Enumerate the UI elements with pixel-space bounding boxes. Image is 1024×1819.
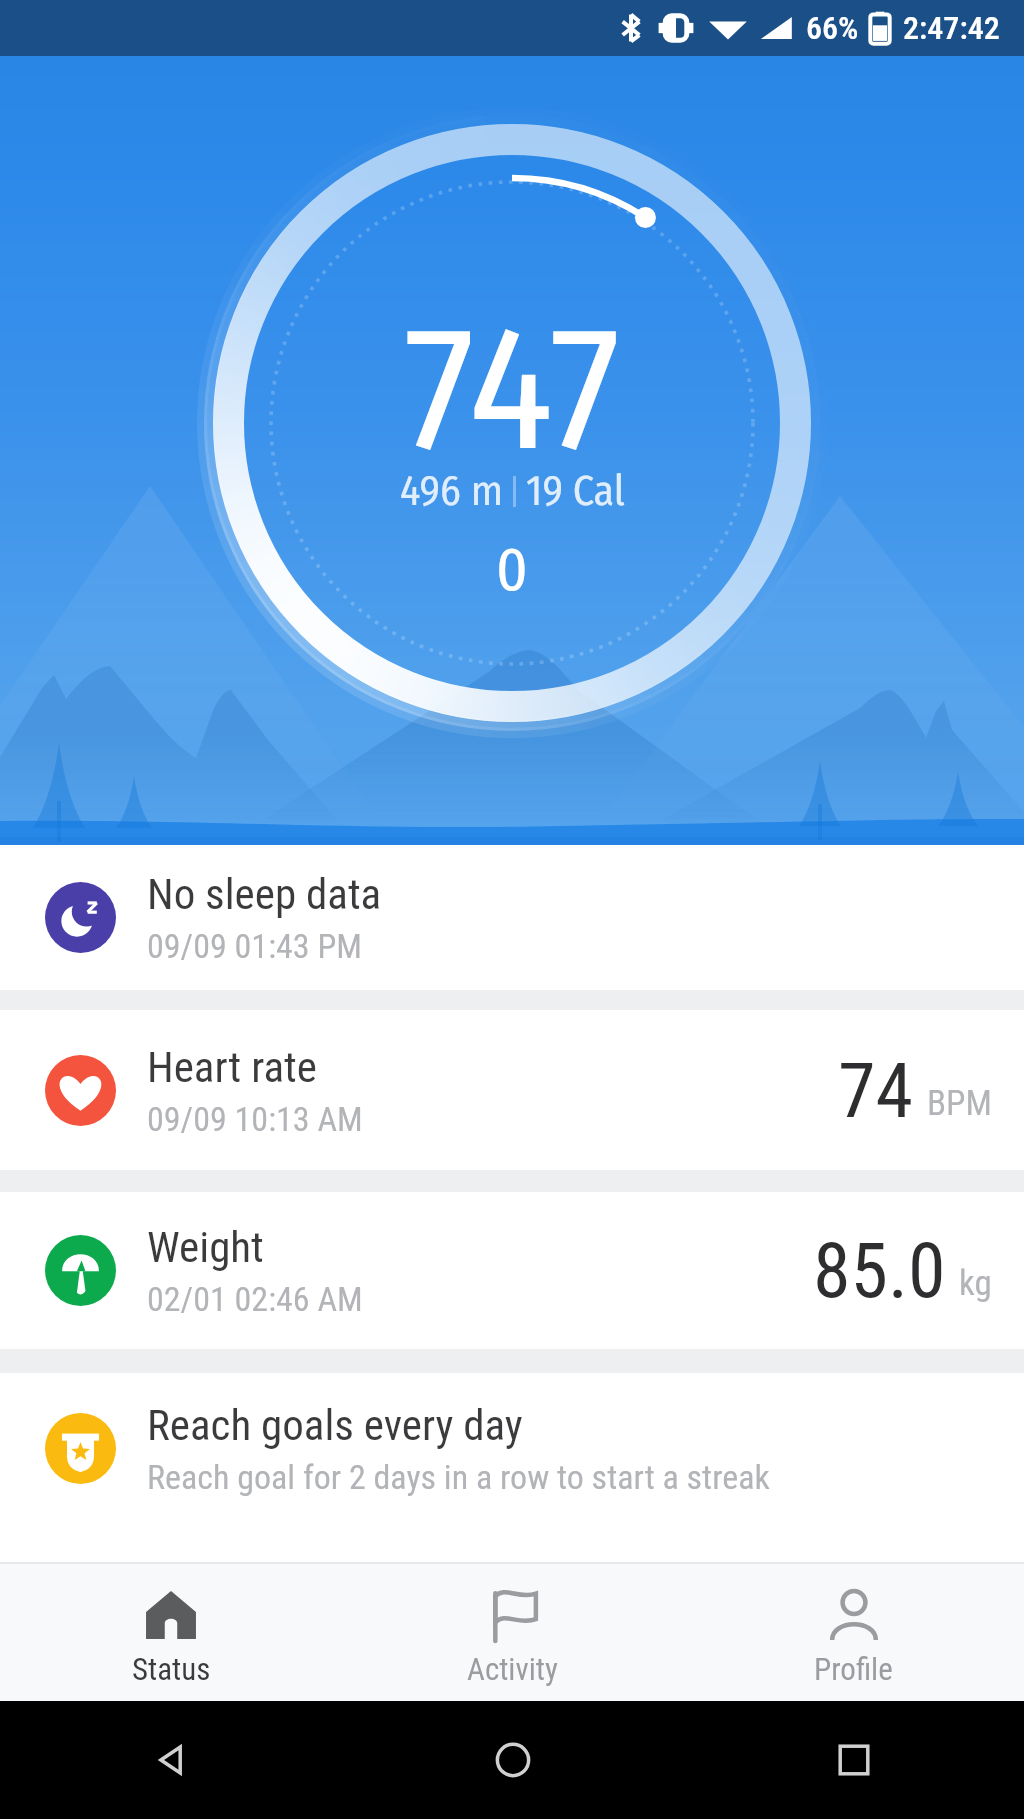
staticText: 747 xyxy=(404,285,621,494)
staticText: Weight xyxy=(147,1222,264,1272)
staticText: 0 xyxy=(496,533,528,606)
staticText: Heart rate xyxy=(147,1042,317,1092)
staticText: Reach goal for 2 days in a row to start … xyxy=(147,1457,770,1497)
staticText: 09/09 10:13 AM xyxy=(147,1099,363,1139)
other: Back xyxy=(148,1737,194,1783)
staticText: Activity xyxy=(467,1651,558,1687)
staticText: 74 xyxy=(838,1046,914,1135)
staticText: 02/01 02:46 AM xyxy=(147,1279,363,1319)
staticText: 66% xyxy=(806,9,859,47)
other: Home xyxy=(490,1737,536,1783)
staticText: Profile xyxy=(814,1651,893,1687)
button[interactable]: Reach goals every day xyxy=(0,1373,1024,1523)
button[interactable]: Status xyxy=(0,1579,342,1687)
staticText: BPM xyxy=(927,1083,992,1124)
button[interactable]: Heart rate xyxy=(0,1010,1024,1170)
button[interactable]: No sleep data xyxy=(0,845,1024,990)
staticText: 09/09 01:43 PM xyxy=(147,926,362,966)
staticText: Status xyxy=(132,1651,211,1687)
staticText: kg xyxy=(959,1263,992,1304)
staticText: 19 Cal xyxy=(526,466,625,516)
staticText: Reach goals every day xyxy=(147,1400,523,1450)
staticText: 496 m xyxy=(400,466,503,516)
staticText: 2:47:42 xyxy=(903,9,1000,47)
button[interactable]: Weight xyxy=(0,1192,1024,1349)
button[interactable]: Activity xyxy=(342,1579,683,1687)
staticText: 85.0 xyxy=(813,1226,946,1315)
other: Recents xyxy=(831,1737,877,1783)
button[interactable]: Profile xyxy=(683,1579,1024,1687)
staticText: No sleep data xyxy=(147,869,382,919)
